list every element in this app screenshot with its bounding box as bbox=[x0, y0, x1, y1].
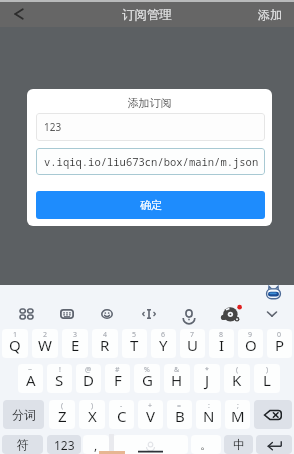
button[interactable]: ~ bbox=[18, 364, 43, 393]
button[interactable]: 3 bbox=[62, 329, 88, 358]
button[interactable]: ; bbox=[225, 400, 250, 429]
staticText: F bbox=[114, 370, 122, 390]
button[interactable]: 5 bbox=[122, 329, 147, 358]
button[interactable]: 123 bbox=[36, 113, 265, 141]
staticText: U bbox=[187, 335, 198, 355]
button[interactable]: Hide keyboard bbox=[260, 302, 284, 326]
staticText: 订阅管理 bbox=[122, 7, 172, 23]
button[interactable]: 2 bbox=[32, 329, 58, 358]
staticText: E bbox=[71, 335, 80, 355]
button[interactable]: 1 bbox=[2, 329, 28, 358]
button[interactable]: + bbox=[138, 400, 163, 429]
staticText: 7 bbox=[190, 330, 195, 340]
staticText: , bbox=[94, 437, 98, 453]
staticText: 添加 bbox=[258, 7, 282, 22]
staticText: = bbox=[177, 401, 182, 411]
staticText: * bbox=[205, 365, 209, 375]
button[interactable]: : bbox=[196, 400, 221, 429]
button[interactable]: , bbox=[83, 435, 109, 454]
staticText: ) bbox=[266, 365, 269, 375]
button[interactable]: # bbox=[105, 364, 130, 393]
button[interactable]: 4 bbox=[92, 329, 118, 358]
staticText: 6 bbox=[161, 330, 166, 340]
staticText: G bbox=[142, 370, 153, 390]
button[interactable]: ) bbox=[79, 400, 105, 429]
staticText: R bbox=[100, 335, 110, 355]
button[interactable]: 123 bbox=[47, 435, 81, 454]
staticText: B bbox=[175, 406, 185, 426]
button[interactable]: Settings bbox=[219, 302, 243, 326]
button[interactable]: Emoji bbox=[95, 302, 119, 326]
button[interactable]: - bbox=[109, 400, 134, 429]
staticText: & bbox=[174, 365, 180, 375]
staticText: J bbox=[205, 370, 210, 390]
button[interactable]: Voice input bbox=[177, 302, 201, 326]
button[interactable]: Space bbox=[113, 435, 188, 454]
staticText: 5 bbox=[132, 330, 137, 340]
button[interactable]: 9 bbox=[238, 329, 263, 358]
button[interactable]: 符 bbox=[2, 435, 43, 454]
staticText: v.iqiq.io/liu673cn/box/main/m.json bbox=[44, 155, 259, 169]
staticText: 9 bbox=[248, 330, 253, 340]
staticText: 。 bbox=[200, 437, 212, 452]
staticText: W bbox=[38, 335, 52, 355]
staticText: ( bbox=[61, 401, 64, 411]
staticText: Y bbox=[159, 335, 168, 355]
staticText: ) bbox=[91, 401, 94, 411]
staticText: # bbox=[115, 365, 120, 375]
button[interactable]: 添加 bbox=[258, 7, 282, 22]
staticText: 3 bbox=[73, 330, 78, 340]
staticText: ! bbox=[59, 365, 61, 375]
staticText: ; bbox=[237, 401, 239, 411]
staticText: 1 bbox=[13, 330, 18, 340]
button[interactable]: 7 bbox=[180, 329, 205, 358]
staticText: L bbox=[263, 370, 271, 390]
staticText: Z bbox=[58, 406, 67, 426]
staticText: 分词 bbox=[12, 407, 36, 422]
button[interactable]: Backspace bbox=[254, 400, 292, 429]
staticText: S bbox=[55, 370, 64, 390]
button[interactable]: v.iqiq.io/liu673cn/box/main/m.json bbox=[36, 148, 265, 175]
button[interactable]: Enter bbox=[256, 435, 292, 454]
staticText: A bbox=[26, 370, 36, 390]
button[interactable]: 6 bbox=[151, 329, 176, 358]
button[interactable]: ) bbox=[254, 364, 280, 393]
staticText: M bbox=[231, 406, 245, 426]
button[interactable]: 分词 bbox=[3, 400, 44, 429]
staticText: 0 bbox=[277, 330, 282, 340]
staticText: Q bbox=[9, 335, 21, 355]
button[interactable]: 8 bbox=[209, 329, 234, 358]
staticText: 123 bbox=[44, 120, 62, 134]
staticText: ~ bbox=[28, 365, 33, 375]
staticText: V bbox=[146, 406, 156, 426]
button[interactable]: Keyboard layouts bbox=[14, 302, 38, 326]
button[interactable]: 中 bbox=[224, 435, 253, 454]
staticText: X bbox=[88, 406, 97, 426]
staticText: 确定 bbox=[140, 198, 162, 212]
staticText: O bbox=[245, 335, 257, 355]
staticText: % bbox=[144, 365, 150, 375]
button[interactable]: * bbox=[194, 364, 220, 393]
button[interactable]: % bbox=[134, 364, 160, 393]
staticText: I bbox=[219, 335, 225, 355]
button[interactable]: 0 bbox=[267, 329, 292, 358]
button[interactable]: 确定 bbox=[36, 191, 265, 219]
staticText: : bbox=[208, 401, 210, 411]
button[interactable]: Input method bbox=[55, 302, 79, 326]
staticText: C bbox=[117, 406, 127, 426]
staticText: 8 bbox=[219, 330, 224, 340]
button[interactable]: 。 bbox=[191, 435, 221, 454]
staticText: H bbox=[171, 370, 183, 390]
button[interactable]: = bbox=[167, 400, 192, 429]
button[interactable]: Move cursor bbox=[137, 302, 161, 326]
staticText: 添加订阅 bbox=[27, 96, 272, 110]
button[interactable]: @ bbox=[76, 364, 101, 393]
staticText: N bbox=[203, 406, 215, 426]
button[interactable]: ( bbox=[49, 400, 75, 429]
button[interactable]: ! bbox=[47, 364, 72, 393]
button[interactable]: Back bbox=[4, 0, 32, 27]
button[interactable]: & bbox=[164, 364, 190, 393]
button[interactable]: ( bbox=[224, 364, 250, 393]
staticText: 123 bbox=[54, 437, 75, 453]
staticText: 2 bbox=[43, 330, 48, 340]
